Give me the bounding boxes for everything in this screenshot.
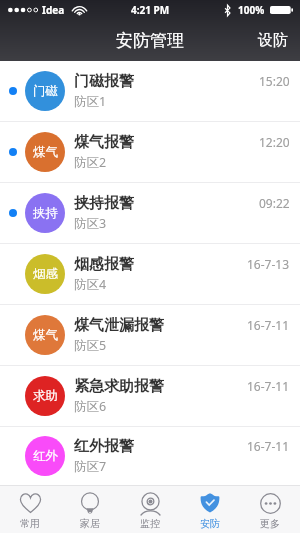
staticText: 16-7-11 — [247, 378, 290, 394]
staticText: 煤气 — [33, 327, 58, 343]
staticText: 16-7-13 — [247, 256, 290, 272]
staticText: 安防 — [200, 517, 220, 530]
button[interactable]: 煤气 — [0, 305, 300, 365]
staticText: 常用 — [20, 517, 40, 530]
button[interactable]: Favorites — [0, 486, 60, 533]
staticText: 15:20 — [259, 73, 290, 89]
button[interactable]: 门磁 — [0, 61, 300, 121]
staticText: 挟持报警 — [74, 194, 134, 213]
other: More — [260, 493, 281, 514]
staticText: 家居 — [80, 517, 100, 530]
button[interactable]: 煤气 — [0, 122, 300, 182]
staticText: 挟持 — [33, 205, 58, 221]
staticText: 防区5 — [74, 337, 107, 354]
staticText: 门磁报警 — [74, 72, 134, 91]
staticText: Idea — [42, 3, 65, 17]
button[interactable]: Monitor — [120, 486, 180, 533]
staticText: 防区6 — [74, 398, 107, 415]
staticText: 烟感 — [33, 266, 58, 282]
other: Monitor — [141, 493, 160, 515]
button[interactable]: 设防 — [246, 23, 300, 58]
staticText: 监控 — [140, 517, 160, 530]
other: Home — [81, 493, 99, 514]
button[interactable]: 烟感 — [0, 244, 300, 304]
staticText: 防区4 — [74, 276, 107, 293]
staticText: 09:22 — [259, 195, 290, 211]
button[interactable]: Security — [180, 486, 240, 533]
staticText: 更多 — [260, 517, 280, 530]
staticText: 煤气泄漏报警 — [74, 316, 164, 335]
staticText: 煤气 — [33, 144, 58, 160]
staticText: 16-7-11 — [247, 438, 290, 454]
button[interactable]: Home — [60, 486, 120, 533]
staticText: 防区3 — [74, 215, 107, 232]
staticText: 煤气报警 — [74, 133, 134, 152]
staticText: 防区1 — [74, 93, 107, 110]
button[interactable]: 求助 — [0, 366, 300, 426]
staticText: 紧急求助报警 — [74, 377, 164, 396]
staticText: 防区2 — [74, 154, 107, 171]
staticText: 安防管理 — [116, 30, 184, 51]
other: Favorites — [20, 493, 41, 513]
staticText: 红外报警 — [74, 437, 134, 456]
staticText: 100% — [238, 3, 265, 17]
staticText: 防区7 — [74, 458, 107, 475]
staticText: 烟感报警 — [74, 255, 134, 274]
staticText: 12:20 — [259, 134, 290, 150]
button[interactable]: 挟持 — [0, 183, 300, 243]
staticText: 16-7-11 — [247, 317, 290, 333]
staticText: 求助 — [33, 388, 58, 404]
other: Security — [200, 493, 220, 513]
staticText: 红外 — [33, 448, 58, 464]
staticText: 设防 — [258, 31, 288, 50]
button[interactable]: More — [240, 486, 300, 533]
staticText: 4:21 PM — [131, 3, 170, 17]
button[interactable]: 红外 — [0, 427, 300, 485]
staticText: 门磁 — [33, 83, 58, 99]
